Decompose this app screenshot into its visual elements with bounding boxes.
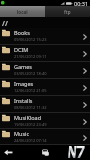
- staticText: Installs: [14, 97, 33, 104]
- staticText: Images: [14, 80, 34, 87]
- staticText: Games: [14, 63, 32, 70]
- staticText: local: [17, 9, 28, 15]
- button[interactable]: //: [0, 17, 90, 28]
- staticText: 00:31: [74, 0, 89, 6]
- staticText: MusiKload: [14, 114, 42, 121]
- staticText: Books: [14, 29, 30, 36]
- button[interactable]: Books: [0, 28, 90, 45]
- button[interactable]: Images: [0, 79, 90, 96]
- staticText: 19/06/2012 23:49: [14, 122, 47, 127]
- staticText: 12/06/2012 21:05: [14, 88, 47, 93]
- staticText: 09/06/2012 15:23: [14, 37, 47, 42]
- staticText: ftp: [64, 9, 71, 15]
- button[interactable]: MusiKload: [0, 113, 90, 129]
- button[interactable]: Installs: [0, 96, 90, 113]
- button[interactable]: local: [0, 6, 45, 17]
- button[interactable]: Back: [2, 146, 15, 159]
- staticText: DCIM: [14, 46, 29, 53]
- staticText: Music: [14, 130, 30, 137]
- button[interactable]: Recent apps: [39, 146, 52, 159]
- staticText: 08/06/2012 11:32: [14, 105, 47, 110]
- button[interactable]: Music: [0, 129, 90, 145]
- staticText: 24/06/2012 07:14: [14, 138, 47, 143]
- button[interactable]: ftp: [45, 6, 90, 17]
- staticText: 21/06/2012 09:11: [14, 54, 47, 59]
- button[interactable]: Games: [0, 62, 90, 79]
- staticText: 03/05/2012 18:40: [14, 71, 47, 76]
- staticText: //: [2, 19, 8, 28]
- button[interactable]: DCIM: [0, 45, 90, 62]
